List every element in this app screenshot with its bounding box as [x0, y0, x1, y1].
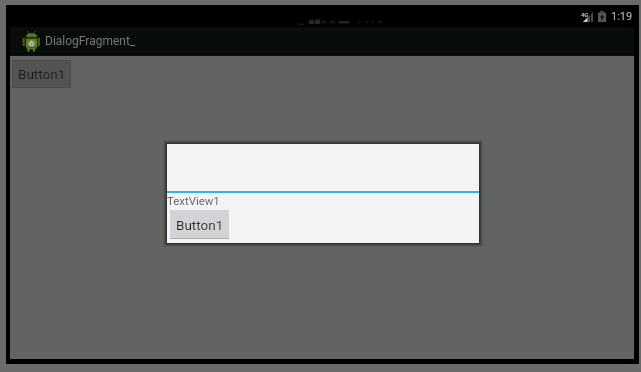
button[interactable]: Button1: [12, 60, 71, 88]
other: App icon: [22, 31, 40, 52]
staticText: TextView1: [167, 194, 220, 207]
staticText: Button1: [18, 66, 66, 82]
button[interactable]: Button1: [170, 210, 229, 239]
staticText: 4G: [581, 11, 589, 18]
staticText: DialogFragment_: [45, 34, 136, 48]
staticText: Button1: [176, 217, 224, 233]
staticText: 1:19: [611, 10, 633, 23]
